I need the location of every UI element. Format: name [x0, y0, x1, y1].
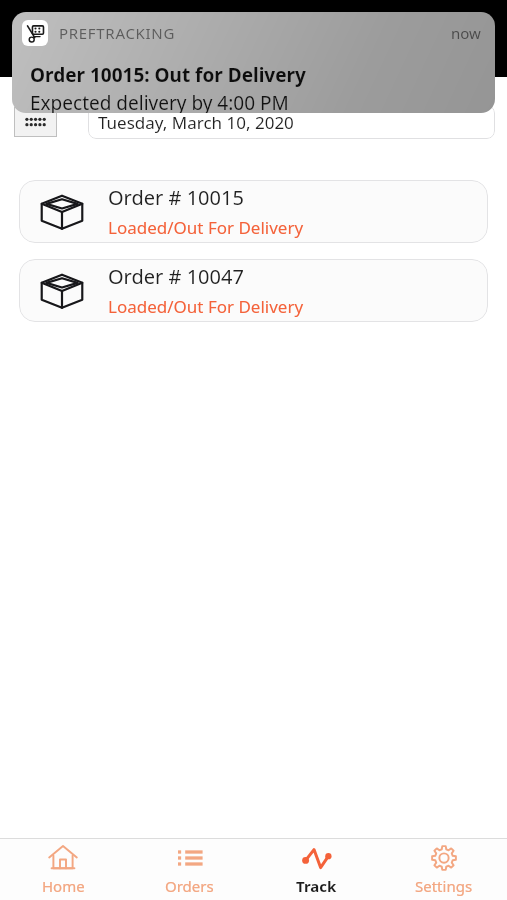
button[interactable]: Orders	[126, 839, 253, 900]
button[interactable]: Settings	[380, 839, 507, 900]
staticText: PREFTRACKING	[59, 23, 176, 43]
button[interactable]: Tuesday, March 10, 2020	[88, 105, 495, 139]
staticText: Orders	[165, 876, 214, 896]
staticText: Order # 10047	[108, 263, 244, 290]
button[interactable]: Order # 10015	[19, 180, 488, 243]
staticText: Track	[296, 876, 337, 896]
staticText: Tuesday, March 10, 2020	[98, 111, 294, 134]
button[interactable]: PREFTRACKING	[12, 12, 495, 113]
staticText: Loaded/Out For Delivery	[108, 216, 304, 239]
button[interactable]: Order # 10047	[19, 259, 488, 322]
staticText: Order # 10015	[108, 184, 244, 211]
staticText: Order 10015: Out for Delivery	[30, 62, 306, 88]
staticText: Home	[42, 876, 85, 896]
button[interactable]: Keypad	[14, 107, 57, 137]
staticText: now	[451, 23, 481, 43]
button[interactable]: Home	[0, 839, 126, 900]
staticText: Settings	[415, 876, 473, 896]
staticText: Loaded/Out For Delivery	[108, 295, 304, 318]
staticText: Expected delivery by 4:00 PM	[30, 90, 289, 113]
button[interactable]: Track	[253, 839, 380, 900]
